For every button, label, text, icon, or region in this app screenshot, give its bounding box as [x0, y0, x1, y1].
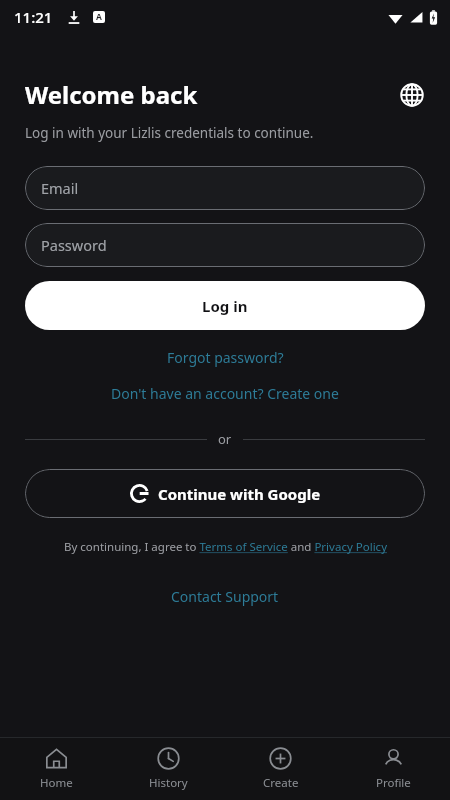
staticText: Password [41, 235, 107, 255]
button[interactable]: Log in [25, 281, 425, 330]
staticText: Profile [376, 775, 411, 791]
button[interactable]: Home [0, 738, 112, 800]
button[interactable]: Continue with Google [25, 469, 425, 518]
button[interactable]: History [112, 738, 224, 800]
staticText: By continuing, I agree to Terms of Servi… [64, 539, 387, 555]
button[interactable]: Email [25, 166, 425, 210]
button[interactable]: Don't have an account? Create one [101, 382, 349, 405]
staticText: Email [41, 178, 79, 198]
staticText: Home [40, 775, 73, 791]
staticText: Log in [202, 296, 248, 316]
button[interactable]: Create [224, 738, 337, 800]
staticText: Create [263, 775, 299, 791]
button[interactable]: By continuing, I agree to Terms of Servi… [18, 539, 432, 555]
staticText: History [149, 775, 188, 791]
staticText: or [218, 430, 232, 448]
staticText: Forgot password? [167, 348, 284, 367]
staticText: Log in with your Lizlis credentials to c… [25, 124, 314, 142]
staticText: A [96, 11, 102, 23]
staticText: Welcome back [25, 78, 198, 111]
button[interactable]: Contact Support [161, 585, 289, 608]
button[interactable]: Forgot password? [157, 346, 294, 369]
staticText: Contact Support [171, 587, 279, 606]
button[interactable]: Profile [337, 738, 450, 800]
button[interactable]: Change language [396, 79, 428, 111]
button[interactable]: Password [25, 223, 425, 267]
staticText: 11:21 [14, 7, 53, 27]
staticText: Don't have an account? Create one [111, 384, 339, 403]
staticText: Continue with Google [158, 484, 321, 504]
